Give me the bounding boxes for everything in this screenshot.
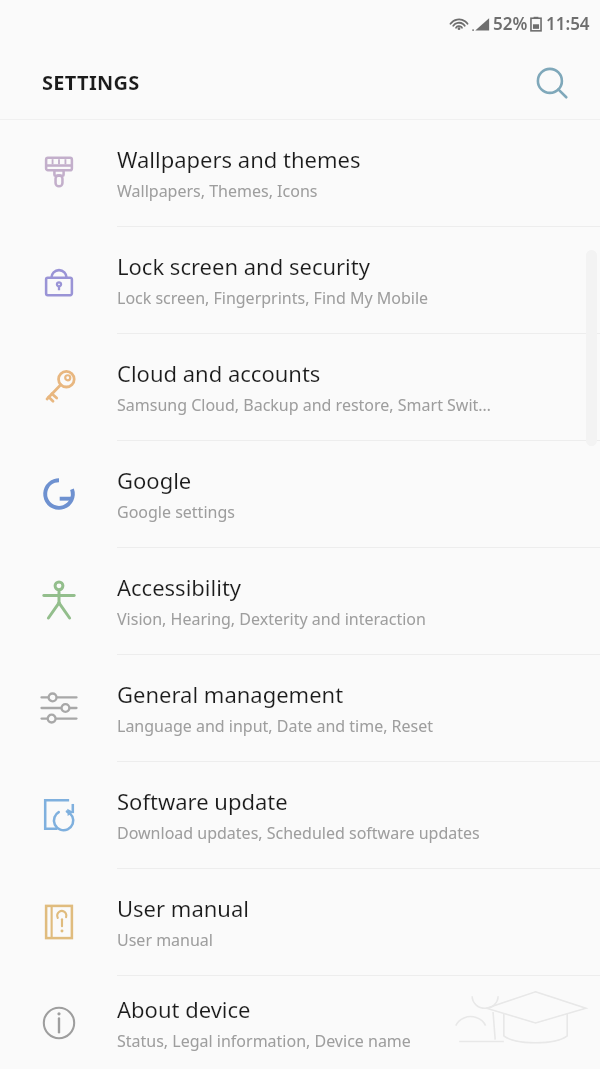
staticText: Lock screen and security [117, 251, 370, 281]
staticText: 52% [493, 12, 528, 35]
staticText: SETTINGS [42, 69, 140, 96]
staticText: Language and input, Date and time, Reset [117, 715, 434, 737]
staticText: Vision, Hearing, Dexterity and interacti… [117, 608, 426, 630]
button[interactable]: About device [0, 976, 600, 1069]
staticText: Wallpapers and themes [117, 144, 361, 174]
button[interactable]: Software update [0, 762, 600, 868]
staticText: Software update [117, 786, 288, 816]
staticText: User manual [117, 929, 213, 951]
staticText: Wallpapers, Themes, Icons [117, 180, 318, 202]
staticText: General management [117, 679, 344, 709]
staticText: Accessibility [117, 572, 242, 602]
staticText: Google settings [117, 501, 235, 523]
staticText: Status, Legal information, Device name [117, 1030, 411, 1052]
button[interactable]: User manual [0, 869, 600, 975]
staticText: Samsung Cloud, Backup and restore, Smart… [117, 394, 491, 416]
button[interactable]: General management [0, 655, 600, 761]
button[interactable]: Accessibility [0, 548, 600, 654]
staticText: User manual [117, 893, 249, 923]
staticText: Google [117, 465, 192, 495]
staticText: Lock screen, Fingerprints, Find My Mobil… [117, 287, 429, 309]
staticText: Cloud and accounts [117, 358, 321, 388]
button[interactable]: Google [0, 441, 600, 547]
button[interactable]: Lock screen and security [0, 227, 600, 333]
staticText: Download updates, Scheduled software upd… [117, 822, 480, 844]
staticText: 11:54 [546, 12, 590, 35]
button[interactable]: Cloud and accounts [0, 334, 600, 440]
staticText: About device [117, 994, 251, 1024]
button[interactable]: Wallpapers and themes [0, 120, 600, 226]
button[interactable]: Search [530, 61, 574, 105]
